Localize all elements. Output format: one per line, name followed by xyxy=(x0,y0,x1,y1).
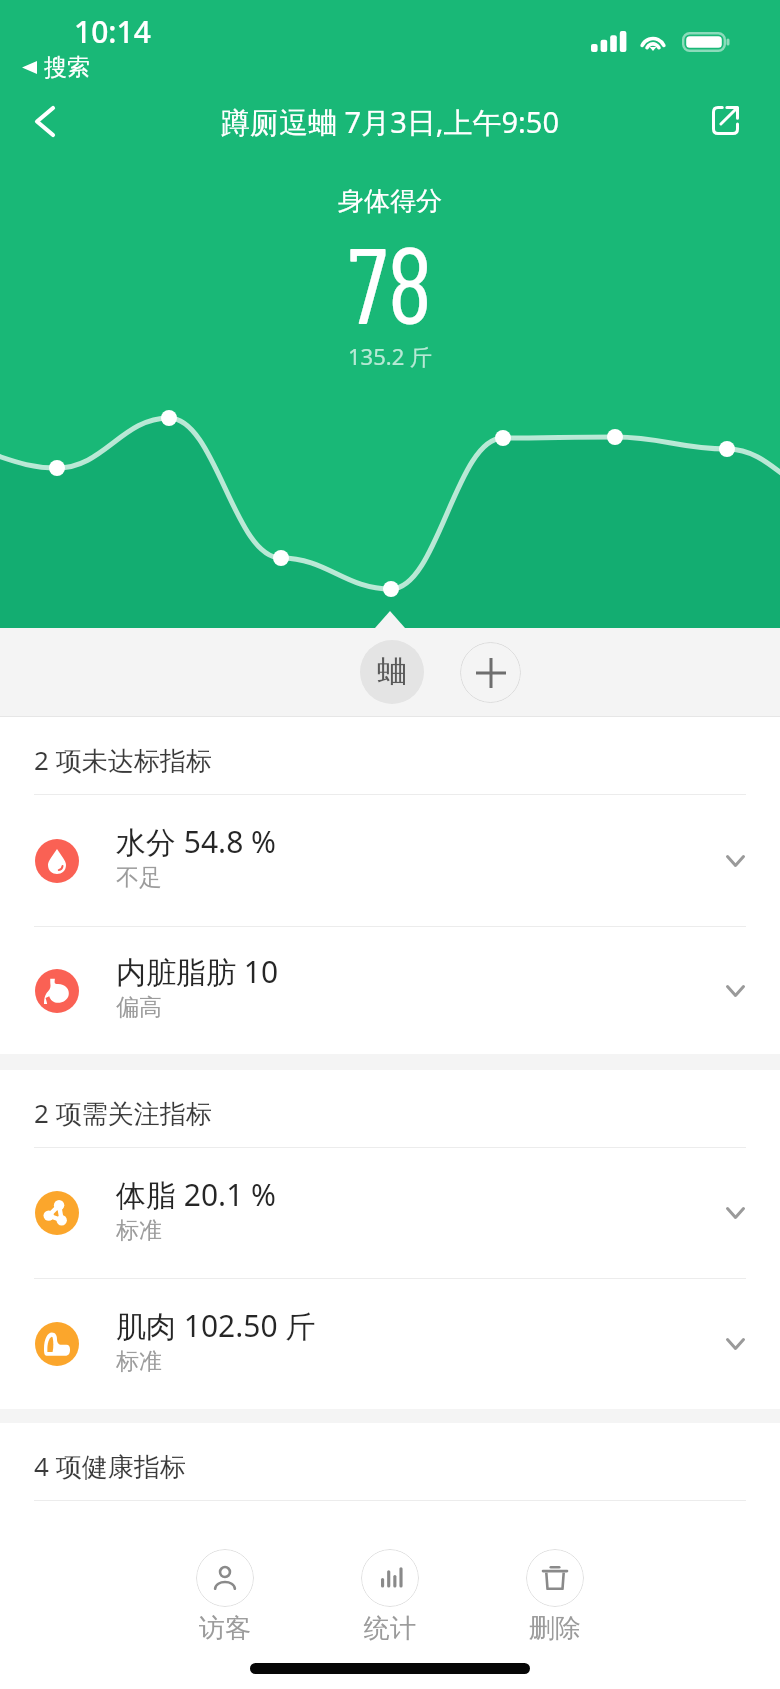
staticText: 内脏脂肪 10 xyxy=(116,951,279,992)
button[interactable]: Add xyxy=(460,642,521,703)
staticText: 蹲厕逗蛐 7月3日,上午9:50 xyxy=(221,102,560,142)
button[interactable]: 水分 54.8 % xyxy=(0,795,780,926)
staticText: 偏高 xyxy=(116,993,162,1022)
staticText: 删除 xyxy=(529,1612,581,1645)
staticText: 不足 xyxy=(116,863,162,892)
button[interactable]: Share xyxy=(697,92,753,148)
staticText: 2 项未达标指标 xyxy=(34,742,212,778)
staticText: 2 项需关注指标 xyxy=(34,1095,212,1131)
staticText: 体脂 20.1 % xyxy=(116,1174,277,1215)
staticText: 统计 xyxy=(364,1612,416,1645)
button[interactable]: 蛐 xyxy=(360,640,424,704)
button[interactable]: 删除 xyxy=(526,1549,584,1645)
staticText: 135.2 斤 xyxy=(348,341,432,371)
staticText: 肌肉 102.50 斤 xyxy=(116,1305,316,1346)
staticText: 蛐 xyxy=(377,653,407,691)
staticText: 4 项健康指标 xyxy=(34,1448,186,1484)
button[interactable]: 体脂 20.1 % xyxy=(0,1148,780,1278)
staticText: 搜索 xyxy=(44,53,90,82)
button[interactable]: 内脏脂肪 10 xyxy=(0,927,780,1054)
staticText: 10:14 xyxy=(74,11,151,52)
button[interactable]: 统计 xyxy=(361,1549,419,1645)
button[interactable]: Back xyxy=(17,93,73,149)
button[interactable]: 访客 xyxy=(196,1549,254,1645)
staticText: 标准 xyxy=(116,1216,162,1245)
button[interactable]: 肌肉 102.50 斤 xyxy=(0,1279,780,1409)
staticText: 78 xyxy=(348,217,433,345)
staticText: 标准 xyxy=(116,1347,162,1376)
staticText: 身体得分 xyxy=(338,185,442,218)
staticText: 访客 xyxy=(199,1612,251,1645)
staticText: 水分 54.8 % xyxy=(116,821,277,862)
